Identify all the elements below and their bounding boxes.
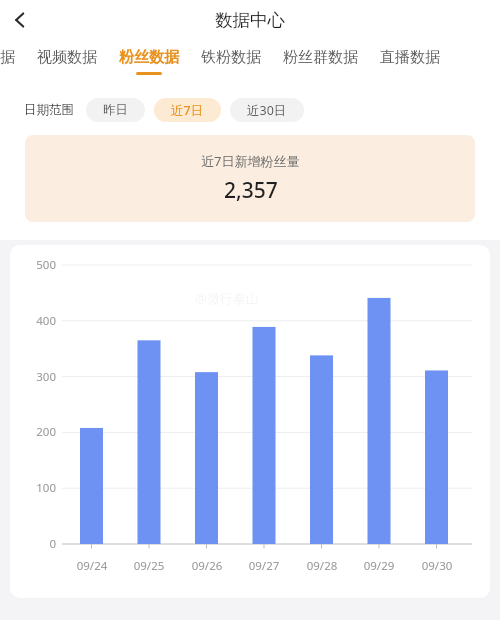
staticText: 粉丝数据 <box>119 48 179 67</box>
staticText: 500 <box>20 257 56 273</box>
staticText: 09/29 <box>353 558 405 574</box>
staticText: 直播数据 <box>380 48 440 67</box>
staticText: 300 <box>20 369 56 385</box>
staticText: 09/30 <box>411 558 463 574</box>
button[interactable]: 视频数据 <box>26 40 108 87</box>
staticText: 近7日 <box>171 102 204 119</box>
staticText: 09/28 <box>296 558 348 574</box>
staticText: 近30日 <box>247 102 287 119</box>
button[interactable]: 直播数据 <box>369 40 451 87</box>
staticText: 昨日 <box>103 102 128 118</box>
staticText: 09/24 <box>66 558 118 574</box>
button[interactable]: 粉丝数据 <box>108 40 190 87</box>
staticText: 视频数据 <box>37 48 97 67</box>
button[interactable]: 粉丝群数据 <box>272 40 369 87</box>
staticText: 200 <box>20 424 56 440</box>
staticText: 09/27 <box>238 558 290 574</box>
button[interactable]: Back <box>0 0 40 40</box>
staticText: 数据中心 <box>215 9 285 31</box>
button[interactable]: 近7日 <box>154 98 221 122</box>
button[interactable]: 铁粉数据 <box>190 40 272 87</box>
staticText: 2,357 <box>224 176 278 205</box>
staticText: 数据 <box>0 48 15 67</box>
button[interactable]: 昨日 <box>86 98 145 122</box>
staticText: 近7日新增粉丝量 <box>201 152 300 170</box>
staticText: 日期范围 <box>24 102 74 118</box>
staticText: 100 <box>20 480 56 496</box>
staticText: 0 <box>20 536 56 552</box>
button[interactable]: 近7日新增粉丝量 <box>25 135 475 222</box>
staticText: 粉丝群数据 <box>283 48 358 67</box>
staticText: 400 <box>20 313 56 329</box>
staticText: 铁粉数据 <box>201 48 261 67</box>
staticText: 09/26 <box>181 558 233 574</box>
staticText: 09/25 <box>123 558 175 574</box>
staticText: @微行泰山 <box>195 289 259 307</box>
button[interactable]: 近30日 <box>230 98 304 122</box>
button[interactable]: 数据 <box>0 40 26 87</box>
